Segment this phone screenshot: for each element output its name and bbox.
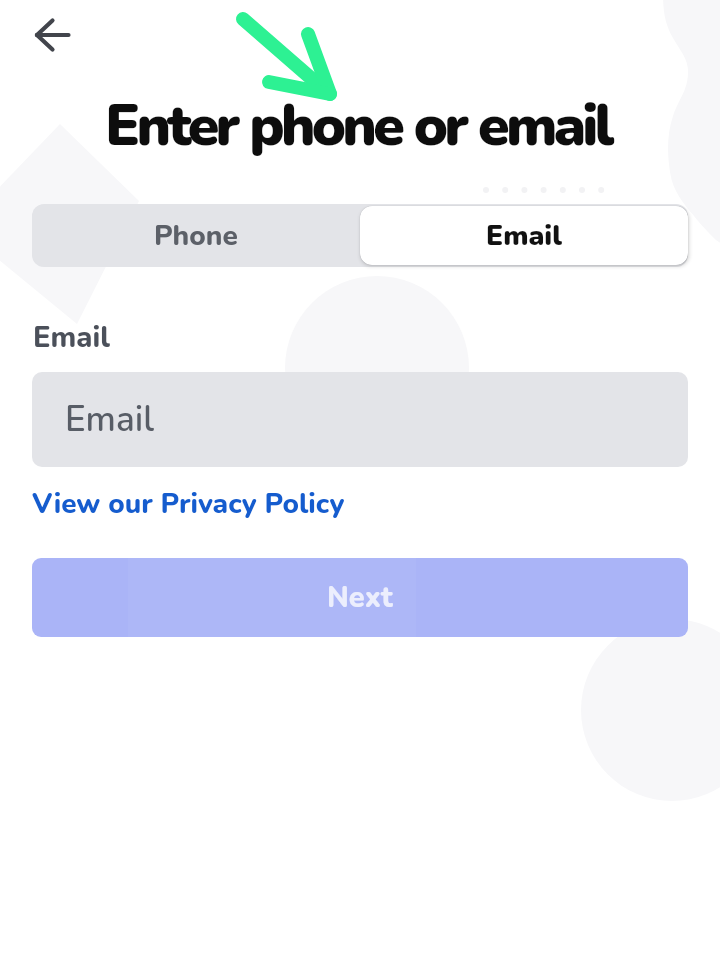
button[interactable]: View our Privacy Policy [32, 485, 345, 523]
staticText: Email [33, 318, 110, 358]
button[interactable]: Phone [32, 204, 360, 267]
staticText: Next [327, 578, 393, 618]
staticText: Enter phone or email [0, 87, 718, 165]
button[interactable]: Back [22, 1, 78, 57]
button[interactable]: Email [32, 372, 688, 467]
button[interactable]: Next [32, 558, 688, 637]
button[interactable]: Email [360, 206, 688, 265]
staticText: Phone [154, 217, 238, 255]
staticText: View our Privacy Policy [32, 485, 345, 523]
staticText: Email [65, 396, 154, 444]
staticText: Email [486, 217, 562, 255]
